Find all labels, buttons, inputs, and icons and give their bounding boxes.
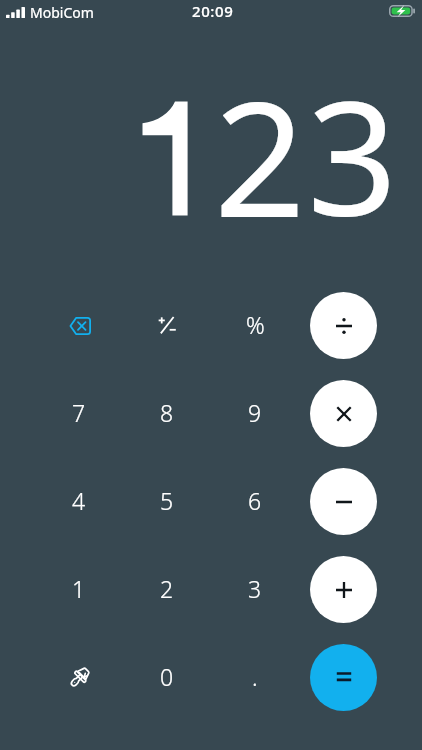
button[interactable]: %	[211, 281, 299, 369]
staticText: 4	[72, 485, 86, 516]
staticText: MobiCom	[30, 3, 94, 22]
button[interactable]: 5	[123, 457, 211, 545]
staticText: 7	[72, 397, 86, 428]
staticText: 8	[160, 397, 174, 428]
staticText: %	[246, 309, 265, 340]
button[interactable]: Multiply	[310, 380, 377, 447]
button[interactable]: Divide	[310, 292, 377, 359]
button[interactable]: 3	[211, 545, 299, 633]
button[interactable]: 4	[35, 457, 123, 545]
staticText: .	[252, 661, 258, 692]
staticText: 9	[248, 397, 262, 428]
staticText: 3	[248, 573, 262, 604]
button[interactable]: Equals	[310, 644, 377, 711]
staticText: 20:09	[192, 1, 234, 21]
staticText: 6	[248, 485, 262, 516]
button[interactable]: Plus	[310, 556, 377, 623]
button[interactable]: 9	[211, 369, 299, 457]
staticText: 2	[160, 573, 174, 604]
staticText: 2	[214, 46, 306, 264]
staticText: 0	[160, 661, 174, 692]
button[interactable]: 0	[123, 633, 211, 721]
button[interactable]: 6	[211, 457, 299, 545]
staticText: 3	[307, 46, 398, 261]
staticText: 1	[72, 573, 86, 604]
button[interactable]: .	[211, 633, 299, 721]
button[interactable]: Plus minus	[123, 281, 211, 369]
button[interactable]: 2	[123, 545, 211, 633]
button[interactable]: Backspace	[35, 281, 123, 369]
button[interactable]: 8	[123, 369, 211, 457]
staticText: 5	[160, 485, 174, 516]
button[interactable]: Theme	[35, 633, 123, 721]
button[interactable]: 1	[35, 545, 123, 633]
button[interactable]: Minus	[310, 468, 377, 535]
button[interactable]: 7	[35, 369, 123, 457]
